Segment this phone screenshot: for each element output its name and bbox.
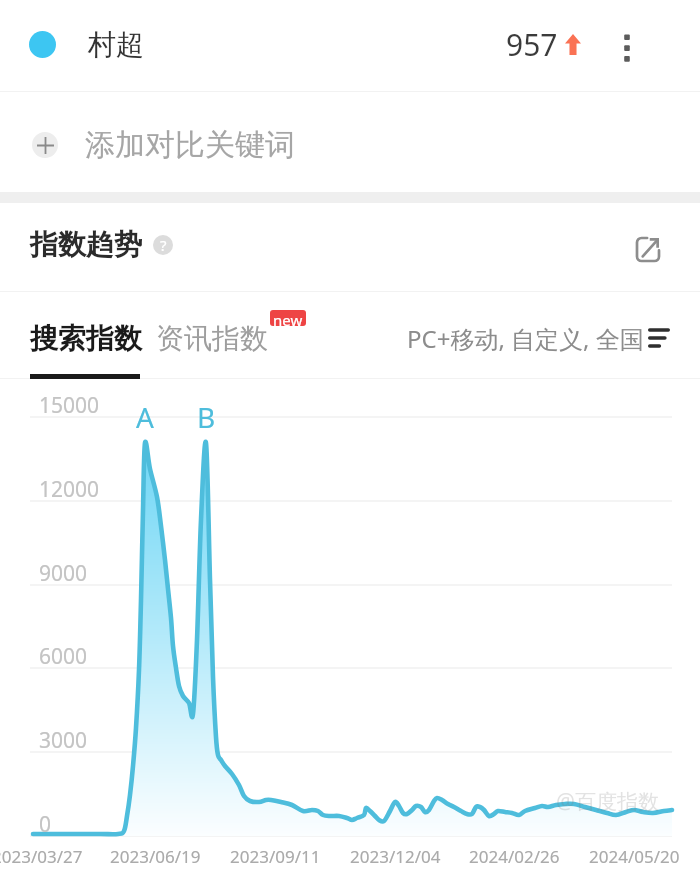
button[interactable]: Help: [153, 235, 173, 255]
staticText: 12000: [39, 475, 100, 504]
button[interactable]: 添加对比关键词: [0, 95, 700, 195]
staticText: 2024/05/20: [589, 845, 680, 868]
staticText: 添加对比关键词: [85, 126, 295, 164]
staticText: @百度指数: [556, 787, 659, 816]
staticText: 957: [506, 24, 558, 65]
button[interactable]: 村超: [0, 0, 700, 88]
button[interactable]: More options: [603, 21, 651, 69]
staticText: ?: [160, 235, 167, 255]
staticText: 6000: [39, 642, 88, 671]
staticText: 9000: [39, 559, 88, 588]
staticText: new: [273, 310, 303, 326]
staticText: 3000: [39, 726, 88, 755]
staticText: B: [197, 398, 216, 436]
button[interactable]: 搜索指数: [30, 321, 142, 356]
button[interactable]: Open in new window: [624, 225, 672, 273]
button[interactable]: PC+移动, 自定义, 全国: [407, 297, 670, 379]
staticText: 2023/06/19: [110, 845, 201, 868]
staticText: 指数趋势: [30, 227, 142, 262]
staticText: 2023/09/11: [230, 845, 321, 868]
staticText: 2023/12/04: [350, 845, 441, 868]
staticText: A: [136, 398, 154, 436]
staticText: 0: [39, 810, 52, 839]
staticText: 15000: [39, 391, 100, 420]
staticText: 村超: [88, 27, 144, 62]
button[interactable]: 资讯指数: [156, 321, 268, 356]
staticText: 2023/03/27: [0, 845, 83, 868]
staticText: PC+移动, 自定义, 全国: [407, 322, 644, 355]
staticText: 2024/02/26: [469, 845, 560, 868]
